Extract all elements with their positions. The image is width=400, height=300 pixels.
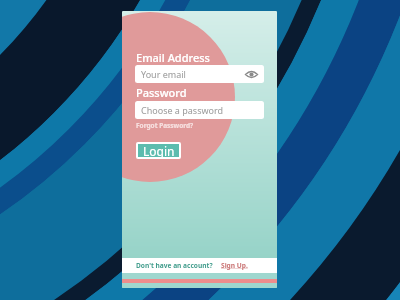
staticText: Don't have an account? [136,261,213,270]
staticText: Password [136,85,187,100]
button[interactable]: Choose a password [135,101,264,119]
button[interactable]: Sign Up. [221,261,248,270]
staticText: Login [143,143,175,159]
staticText: Your email [141,68,186,80]
staticText: Email Address [136,50,210,65]
button[interactable]: Forgot Password? [136,121,194,130]
staticText: Choose a password [141,104,224,116]
button[interactable]: Login [136,142,181,159]
button[interactable]: Show password [244,67,258,81]
button[interactable]: Your email [135,65,264,83]
